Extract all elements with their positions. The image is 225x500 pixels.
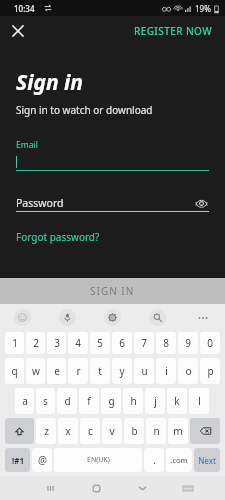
staticText: SIGN IN xyxy=(90,284,135,298)
staticText: x xyxy=(65,424,71,438)
staticText: e xyxy=(54,364,60,378)
staticText: z xyxy=(44,424,49,438)
staticText: REGISTER NOW xyxy=(134,24,213,38)
button[interactable]: k xyxy=(167,388,187,414)
button[interactable]: t xyxy=(90,358,110,384)
button[interactable]: More options xyxy=(180,304,225,330)
staticText: Sign in to watch or download xyxy=(16,103,153,117)
staticText: r xyxy=(76,364,81,378)
button[interactable]: q xyxy=(5,358,24,384)
button[interactable]: Recent apps xyxy=(27,476,73,500)
button[interactable]: l xyxy=(189,388,209,414)
button[interactable]: 8 xyxy=(156,332,176,354)
staticText: s xyxy=(43,394,48,408)
button[interactable]: Backspace xyxy=(190,418,220,444)
button[interactable]: .com xyxy=(166,448,192,472)
button[interactable]: Emoji xyxy=(0,304,45,330)
button[interactable]: y xyxy=(112,358,132,384)
staticText: Next xyxy=(198,455,216,466)
staticText: .com xyxy=(170,455,188,465)
staticText: m xyxy=(173,424,183,438)
staticText: k xyxy=(174,394,180,408)
staticText: 10:34 xyxy=(14,3,35,14)
button[interactable]: Forgot password? xyxy=(16,230,100,244)
staticText: 19% xyxy=(195,3,211,14)
staticText: i xyxy=(165,364,168,378)
button[interactable]: i xyxy=(156,358,176,384)
button[interactable]: 2 xyxy=(26,332,45,354)
button[interactable]: x xyxy=(58,418,78,444)
button[interactable]: Password xyxy=(16,195,209,212)
button[interactable]: @ xyxy=(32,448,52,472)
button[interactable]: 3 xyxy=(47,332,66,354)
staticText: y xyxy=(119,364,125,378)
staticText: b xyxy=(131,424,138,438)
button[interactable]: d xyxy=(57,388,77,414)
staticText: . xyxy=(153,453,156,467)
button[interactable]: . xyxy=(144,448,164,472)
button[interactable]: 7 xyxy=(134,332,154,354)
staticText: p xyxy=(207,364,214,378)
button[interactable]: h xyxy=(123,388,143,414)
staticText: q xyxy=(11,364,18,378)
button[interactable]: Keyboard layout xyxy=(165,476,211,500)
button[interactable]: EN(UK) xyxy=(54,448,142,472)
staticText: !#1 xyxy=(12,455,24,466)
button[interactable]: f xyxy=(79,388,99,414)
button[interactable]: u xyxy=(134,358,154,384)
button[interactable]: Voice input xyxy=(45,304,90,330)
button[interactable]: z xyxy=(36,418,56,444)
button[interactable]: p xyxy=(200,358,220,384)
staticText: @ xyxy=(38,453,47,467)
staticText: 1 xyxy=(12,336,18,350)
button[interactable]: c xyxy=(80,418,100,444)
button[interactable]: o xyxy=(178,358,198,384)
button[interactable]: m xyxy=(168,418,188,444)
staticText: 5 xyxy=(97,336,103,350)
staticText: EN(UK) xyxy=(87,455,110,465)
button[interactable]: w xyxy=(26,358,45,384)
button[interactable]: a xyxy=(15,388,34,414)
staticText: w xyxy=(32,364,40,378)
button[interactable]: j xyxy=(145,388,165,414)
button[interactable]: Settings xyxy=(90,304,135,330)
staticText: 3 xyxy=(54,336,60,350)
button[interactable]: r xyxy=(68,358,88,384)
staticText: v xyxy=(109,424,115,438)
button[interactable]: Next xyxy=(194,448,220,472)
button[interactable]: 4 xyxy=(68,332,88,354)
button[interactable]: Shift xyxy=(5,418,34,444)
staticText: 4 xyxy=(75,336,81,350)
button[interactable]: e xyxy=(47,358,66,384)
staticText: n xyxy=(153,424,160,438)
button[interactable]: Search xyxy=(135,304,180,330)
staticText: 2 xyxy=(33,336,39,350)
button[interactable]: Close xyxy=(7,20,29,42)
staticText: Sign in xyxy=(16,68,84,97)
button[interactable]: 9 xyxy=(178,332,198,354)
button[interactable]: Home xyxy=(73,476,119,500)
staticText: 0 xyxy=(207,336,213,350)
button[interactable]: Email xyxy=(16,139,209,171)
button[interactable]: n xyxy=(146,418,166,444)
staticText: 7 xyxy=(141,336,147,350)
staticText: l xyxy=(198,394,201,408)
staticText: h xyxy=(130,394,137,408)
staticText: 9 xyxy=(185,336,191,350)
staticText: a xyxy=(22,394,28,408)
button[interactable]: b xyxy=(124,418,144,444)
button[interactable]: 6 xyxy=(112,332,132,354)
button[interactable]: 5 xyxy=(90,332,110,354)
button[interactable]: REGISTER NOW xyxy=(130,20,217,42)
staticText: g xyxy=(108,394,115,408)
button[interactable]: 1 xyxy=(5,332,24,354)
button[interactable]: s xyxy=(36,388,55,414)
button[interactable]: v xyxy=(102,418,122,444)
button[interactable]: g xyxy=(101,388,121,414)
staticText: 8 xyxy=(163,336,169,350)
button[interactable]: !#1 xyxy=(5,448,30,472)
button[interactable]: SIGN IN xyxy=(0,278,225,304)
button[interactable]: 0 xyxy=(200,332,220,354)
button[interactable]: Hide keyboard xyxy=(119,476,165,500)
staticText: c xyxy=(88,424,93,438)
